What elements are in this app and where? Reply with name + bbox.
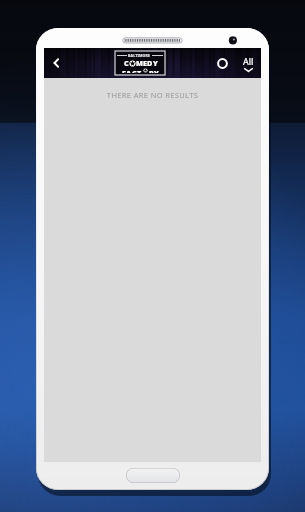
staticText: F <box>122 68 126 73</box>
button[interactable]: BALTIMORE <box>115 51 165 75</box>
staticText: A <box>126 68 132 73</box>
button[interactable]: Back <box>44 48 70 78</box>
button[interactable]: Refresh <box>209 48 235 78</box>
staticText: Y <box>154 68 159 73</box>
button[interactable]: Home <box>126 468 180 483</box>
button[interactable]: All <box>235 48 261 78</box>
staticText: BALTIMORE <box>128 53 151 58</box>
staticText: C <box>124 58 129 68</box>
staticText: THERE ARE NO RESULTS <box>44 90 261 100</box>
staticText: E <box>143 58 147 68</box>
staticText: All <box>243 55 254 67</box>
staticText: Y <box>153 58 158 68</box>
staticText: D <box>147 58 153 68</box>
staticText: M <box>136 58 143 68</box>
staticText: R <box>149 68 154 73</box>
staticText: T <box>137 68 142 73</box>
staticText: C <box>132 68 137 73</box>
